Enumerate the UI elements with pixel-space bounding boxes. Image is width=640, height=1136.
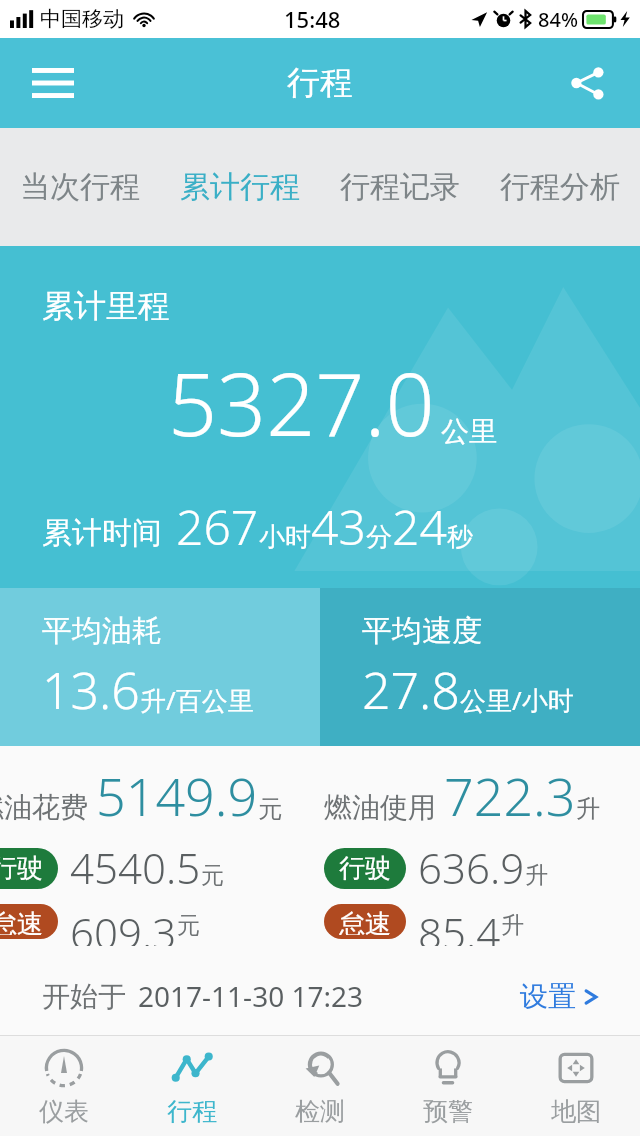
- staticText: 行驶: [0, 852, 43, 885]
- staticText: 检测: [295, 1096, 345, 1127]
- button[interactable]: Menu: [22, 52, 84, 114]
- staticText: 公里/小时: [460, 682, 574, 718]
- staticText: 5327.0: [168, 344, 435, 461]
- staticText: 行驶: [339, 852, 391, 885]
- staticText: 当次行程: [20, 168, 140, 206]
- staticText: 84%: [538, 6, 578, 33]
- button[interactable]: 行程记录: [320, 128, 480, 246]
- button[interactable]: 行程分析: [480, 128, 640, 246]
- staticText: 仪表: [39, 1096, 89, 1127]
- staticText: 升/百公里: [140, 682, 254, 718]
- staticText: 元: [258, 794, 282, 824]
- staticText: 怠速: [339, 908, 391, 935]
- staticText: 平均速度: [362, 612, 482, 650]
- staticText: 636.9: [418, 839, 525, 896]
- button[interactable]: 燃油花费: [0, 746, 320, 946]
- staticText: 5149.9: [96, 760, 258, 831]
- staticText: 元: [177, 911, 200, 940]
- staticText: 24: [392, 494, 447, 559]
- staticText: 行程: [287, 62, 353, 104]
- staticText: 分: [366, 521, 392, 554]
- staticText: 升: [525, 861, 548, 890]
- staticText: 累计行程: [180, 168, 300, 206]
- button[interactable]: 平均油耗: [0, 588, 320, 746]
- staticText: 609.3: [70, 904, 177, 946]
- staticText: 升: [576, 794, 600, 824]
- staticText: 预警: [423, 1096, 473, 1127]
- staticText: 开始于: [42, 979, 126, 1014]
- button[interactable]: 当次行程: [0, 128, 160, 246]
- staticText: 小时: [259, 521, 311, 554]
- staticText: 15:48: [284, 4, 341, 34]
- staticText: 秒: [447, 521, 473, 554]
- staticText: 怠速: [0, 908, 43, 935]
- staticText: 2017-11-30 17:23: [138, 977, 364, 1015]
- staticText: 升: [501, 911, 524, 940]
- button[interactable]: Share: [558, 54, 616, 112]
- staticText: 元: [201, 861, 224, 890]
- button[interactable]: 累计行程: [160, 128, 320, 246]
- button[interactable]: 预警: [384, 1036, 512, 1136]
- staticText: 燃油使用: [324, 790, 436, 825]
- staticText: 27.8: [362, 656, 460, 724]
- button[interactable]: 检测: [256, 1036, 384, 1136]
- staticText: 行程分析: [500, 168, 620, 206]
- staticText: 平均油耗: [42, 612, 162, 650]
- button[interactable]: 行程: [128, 1036, 256, 1136]
- staticText: 累计时间: [42, 514, 162, 552]
- button[interactable]: 地图: [512, 1036, 640, 1136]
- staticText: 累计里程: [42, 286, 170, 326]
- staticText: 722.3: [444, 760, 576, 831]
- staticText: 85.4: [418, 904, 501, 946]
- staticText: 4540.5: [70, 839, 201, 896]
- staticText: 中国移动: [40, 6, 124, 32]
- staticText: 地图: [551, 1096, 601, 1127]
- button[interactable]: 设置: [520, 979, 598, 1014]
- staticText: 行程: [167, 1096, 217, 1127]
- staticText: 燃油花费: [0, 790, 88, 825]
- staticText: 267: [176, 494, 259, 559]
- staticText: 行程记录: [340, 168, 460, 206]
- button[interactable]: 平均速度: [320, 588, 640, 746]
- staticText: 43: [311, 494, 366, 559]
- staticText: 公里: [441, 414, 497, 449]
- staticText: 13.6: [42, 656, 140, 724]
- button[interactable]: 燃油使用: [320, 746, 640, 946]
- button[interactable]: 仪表: [0, 1036, 128, 1136]
- staticText: 设置: [520, 979, 576, 1014]
